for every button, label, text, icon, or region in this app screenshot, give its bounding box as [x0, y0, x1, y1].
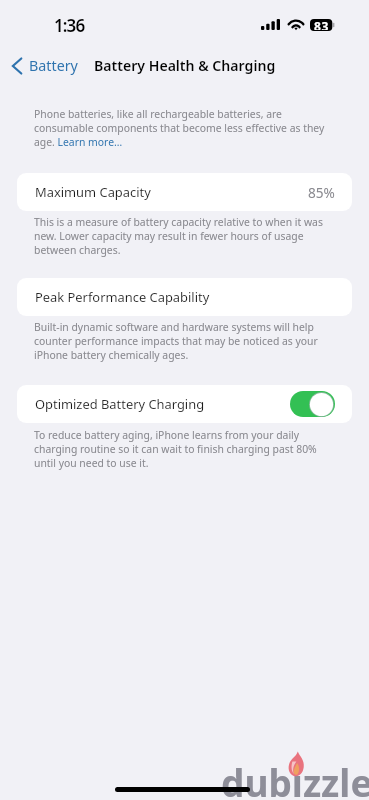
button[interactable]: Battery — [10, 52, 78, 79]
staticText: To reduce battery aging, iPhone learns f… — [34, 428, 327, 470]
button[interactable]: Maximum Capacity — [17, 173, 352, 211]
staticText: dubizzle — [221, 757, 369, 800]
staticText: Phone batteries, like all rechargeable b… — [34, 107, 327, 149]
button[interactable]: Peak Performance Capability — [17, 278, 352, 316]
staticText: 83 — [314, 18, 329, 30]
staticText: Built-in dynamic software and hardware s… — [34, 320, 327, 362]
button[interactable]: Optimized Battery Charging toggle, on — [290, 391, 335, 417]
staticText: Peak Performance Capability — [35, 288, 210, 306]
staticText: 85% — [308, 183, 335, 202]
staticText: Battery — [29, 56, 78, 75]
button[interactable]: Learn more about battery health — [58, 136, 123, 149]
staticText: 1:36 — [54, 14, 85, 37]
staticText: Battery Health & Charging — [94, 56, 276, 75]
staticText: Optimized Battery Charging — [35, 395, 205, 413]
staticText: Maximum Capacity — [35, 183, 151, 201]
button[interactable]: Optimized Battery Charging — [17, 385, 352, 423]
staticText: This is a measure of battery capacity re… — [34, 215, 327, 257]
